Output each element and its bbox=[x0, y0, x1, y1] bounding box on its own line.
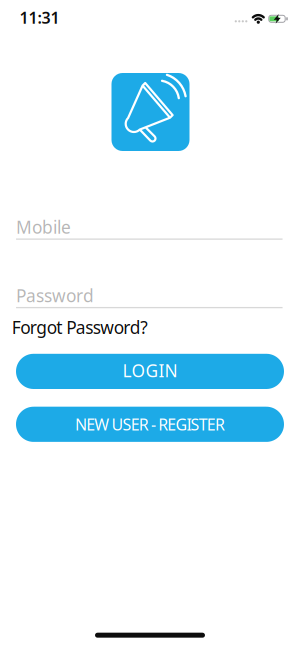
staticText: Forgot Password? bbox=[12, 316, 148, 339]
staticText: LOGIN bbox=[122, 359, 177, 382]
staticText: Mobile bbox=[16, 215, 71, 238]
button[interactable]: NEW USER - REGISTER bbox=[16, 407, 284, 442]
staticText: 11:31 bbox=[19, 7, 59, 28]
button[interactable]: Mobile bbox=[16, 217, 283, 238]
button[interactable]: Forgot Password? bbox=[12, 316, 148, 339]
staticText: NEW USER - REGISTER bbox=[75, 414, 225, 435]
button[interactable]: Password bbox=[16, 284, 283, 308]
button[interactable]: LOGIN bbox=[16, 354, 284, 389]
staticText: Password bbox=[16, 284, 94, 307]
